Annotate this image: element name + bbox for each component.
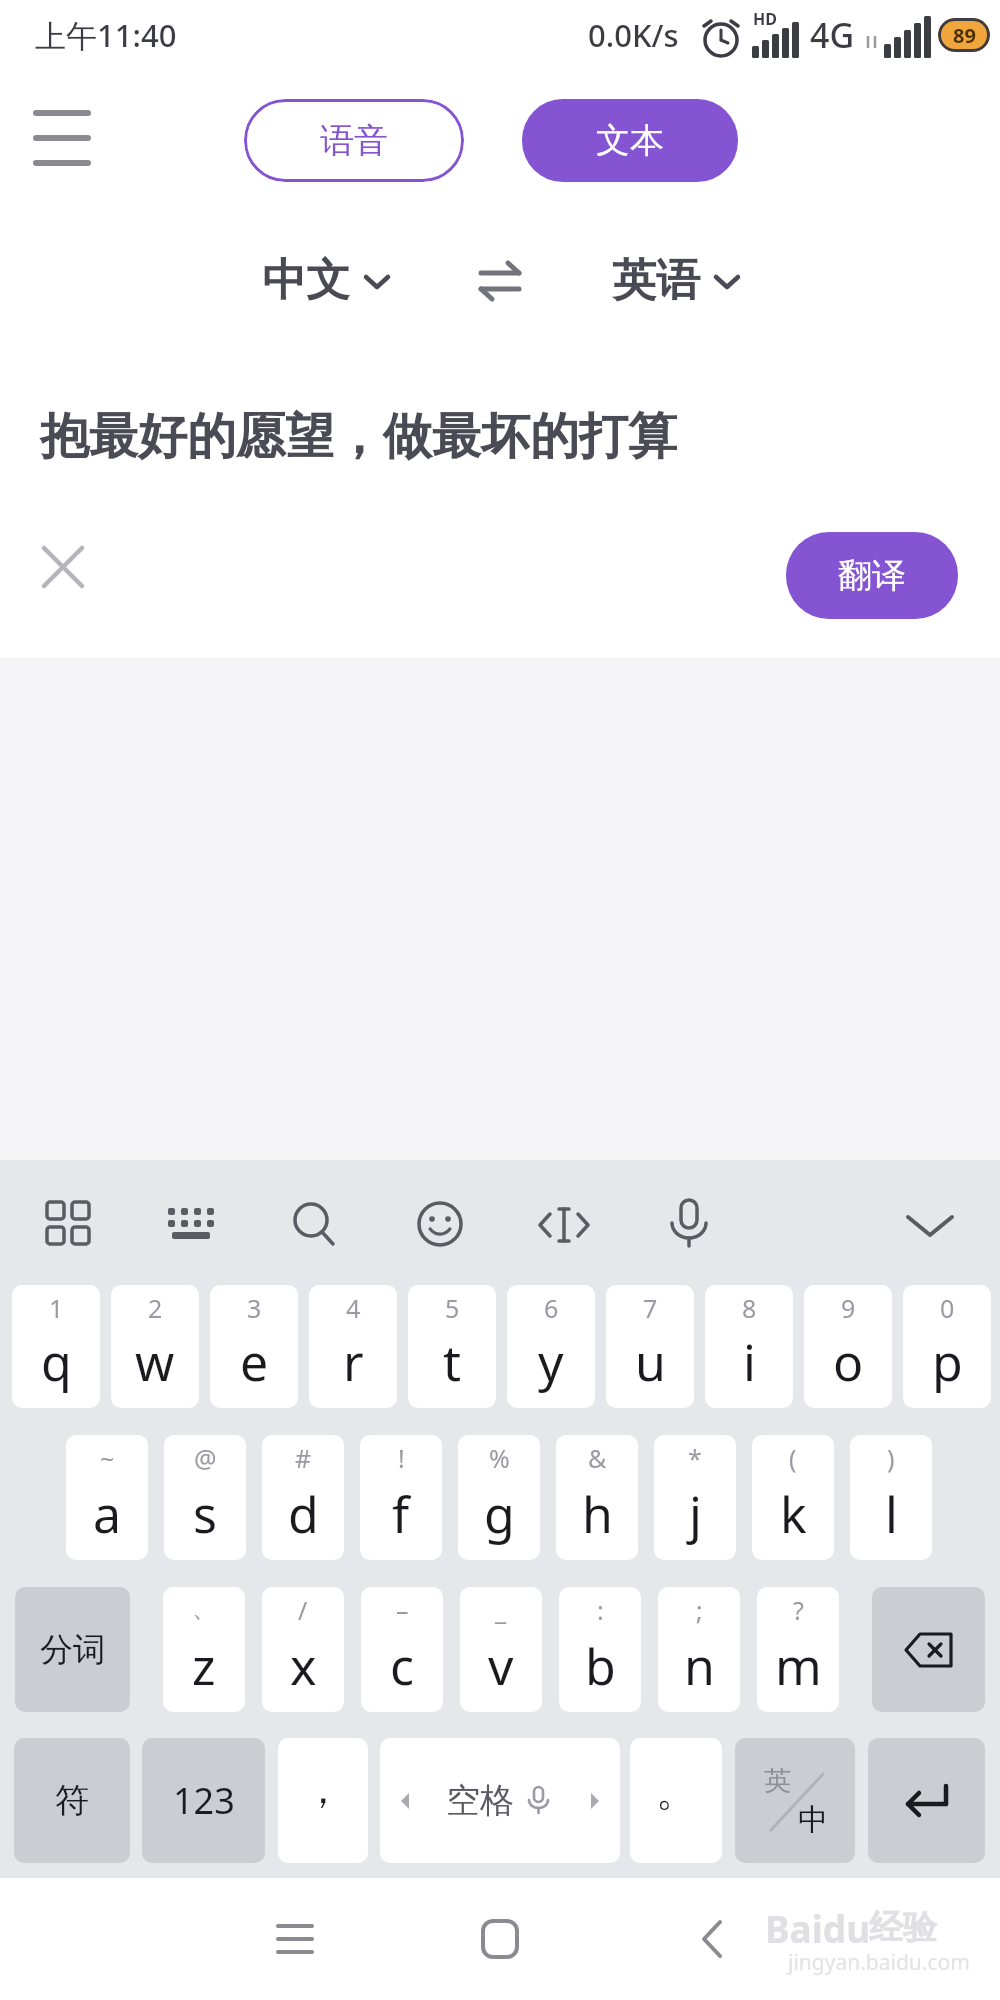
staticText: 9 <box>841 1291 856 1325</box>
button[interactable]: * <box>654 1435 736 1560</box>
button[interactable]: ， <box>278 1738 368 1863</box>
staticText: 1 <box>49 1291 64 1325</box>
button[interactable]: 英 <box>735 1738 855 1863</box>
button[interactable] <box>30 103 94 175</box>
staticText: / <box>298 1593 308 1627</box>
button[interactable] <box>470 250 530 310</box>
staticText: 4G <box>810 12 855 58</box>
button[interactable]: 2 <box>111 1285 199 1408</box>
button[interactable]: ! <box>360 1435 442 1560</box>
button[interactable]: 123 <box>142 1738 265 1863</box>
button[interactable]: 4 <box>309 1285 397 1408</box>
staticText: ( <box>789 1441 797 1475</box>
staticText: ~ <box>100 1441 115 1475</box>
button[interactable]: @ <box>164 1435 246 1560</box>
staticText: 7 <box>643 1291 658 1325</box>
button[interactable] <box>164 1200 220 1250</box>
button[interactable]: 语音 <box>244 99 464 182</box>
button[interactable] <box>288 1198 342 1252</box>
button[interactable] <box>30 534 96 600</box>
staticText: ? <box>793 1593 804 1627</box>
staticText: b <box>585 1632 616 1700</box>
button[interactable]: : <box>559 1587 641 1712</box>
staticText: # <box>295 1441 312 1475</box>
button[interactable] <box>414 1198 468 1252</box>
staticText: 文本 <box>596 119 664 162</box>
button[interactable]: 。 <box>630 1738 722 1863</box>
button[interactable] <box>872 1587 985 1712</box>
button[interactable] <box>664 1196 714 1254</box>
staticText: Baidu <box>765 1903 871 1953</box>
button[interactable]: 5 <box>408 1285 496 1408</box>
staticText: jingyan.baidu.com <box>788 1948 970 1977</box>
button[interactable]: 3 <box>210 1285 298 1408</box>
button[interactable]: ( <box>752 1435 834 1560</box>
staticText: ) <box>887 1441 895 1475</box>
button[interactable]: % <box>458 1435 540 1560</box>
button[interactable]: 分词 <box>15 1587 130 1712</box>
button[interactable] <box>536 1200 592 1252</box>
staticText: ; <box>696 1593 703 1627</box>
staticText: & <box>588 1441 607 1475</box>
button[interactable]: ; <box>658 1587 740 1712</box>
staticText: 语音 <box>320 119 388 162</box>
staticText: – <box>396 1593 409 1627</box>
button[interactable]: 、 <box>163 1587 245 1712</box>
button[interactable]: # <box>262 1435 344 1560</box>
staticText: i <box>743 1328 756 1396</box>
staticText: 中 <box>798 1801 828 1839</box>
staticText: p <box>932 1328 963 1396</box>
staticText: 英语 <box>612 253 700 308</box>
staticText: 0 <box>940 1291 955 1325</box>
staticText: w <box>135 1328 175 1396</box>
staticText: o <box>833 1328 864 1396</box>
staticText: x <box>290 1632 317 1700</box>
button[interactable]: ) <box>850 1435 932 1560</box>
staticText: k <box>780 1480 807 1548</box>
button[interactable]: & <box>556 1435 638 1560</box>
button[interactable]: / <box>262 1587 344 1712</box>
staticText: d <box>288 1480 319 1548</box>
button[interactable]: ? <box>757 1587 839 1712</box>
button[interactable]: 9 <box>804 1285 892 1408</box>
button[interactable] <box>40 1195 96 1251</box>
staticText: ! <box>398 1441 405 1475</box>
button[interactable]: 1 <box>12 1285 100 1408</box>
button[interactable] <box>900 1205 960 1249</box>
staticText: y <box>538 1328 564 1396</box>
button[interactable]: 0 <box>903 1285 991 1408</box>
staticText: l <box>885 1480 898 1548</box>
staticText: 分词 <box>40 1629 106 1671</box>
staticText: 3 <box>247 1291 262 1325</box>
button[interactable]: 7 <box>606 1285 694 1408</box>
staticText: a <box>93 1480 122 1548</box>
button[interactable]: 英语 <box>600 245 750 315</box>
button[interactable]: _ <box>460 1587 542 1712</box>
staticText: 4 <box>346 1291 361 1325</box>
button[interactable] <box>467 1906 533 1972</box>
button[interactable]: 6 <box>507 1285 595 1408</box>
staticText: 0.0K/s <box>588 14 679 56</box>
button[interactable]: 中文 <box>250 245 400 315</box>
button[interactable]: 文本 <box>522 99 738 182</box>
button[interactable]: 符 <box>14 1738 130 1863</box>
staticText: 空格 <box>446 1779 514 1822</box>
button[interactable] <box>868 1738 985 1863</box>
button[interactable]: 8 <box>705 1285 793 1408</box>
staticText: v <box>488 1632 514 1700</box>
staticText: m <box>775 1632 822 1700</box>
button[interactable]: 空格 <box>380 1738 620 1863</box>
staticText: : <box>597 1593 604 1627</box>
staticText: e <box>240 1328 269 1396</box>
staticText: c <box>390 1632 414 1700</box>
button[interactable] <box>262 1906 328 1972</box>
staticText: 6 <box>544 1291 559 1325</box>
button[interactable] <box>680 1906 746 1972</box>
staticText: z <box>192 1632 216 1700</box>
button[interactable]: 翻译 <box>786 532 958 619</box>
button[interactable]: ~ <box>66 1435 148 1560</box>
staticText: 89 <box>953 22 976 49</box>
button[interactable]: – <box>361 1587 443 1712</box>
staticText: 8 <box>742 1291 757 1325</box>
staticText: u <box>635 1328 666 1396</box>
